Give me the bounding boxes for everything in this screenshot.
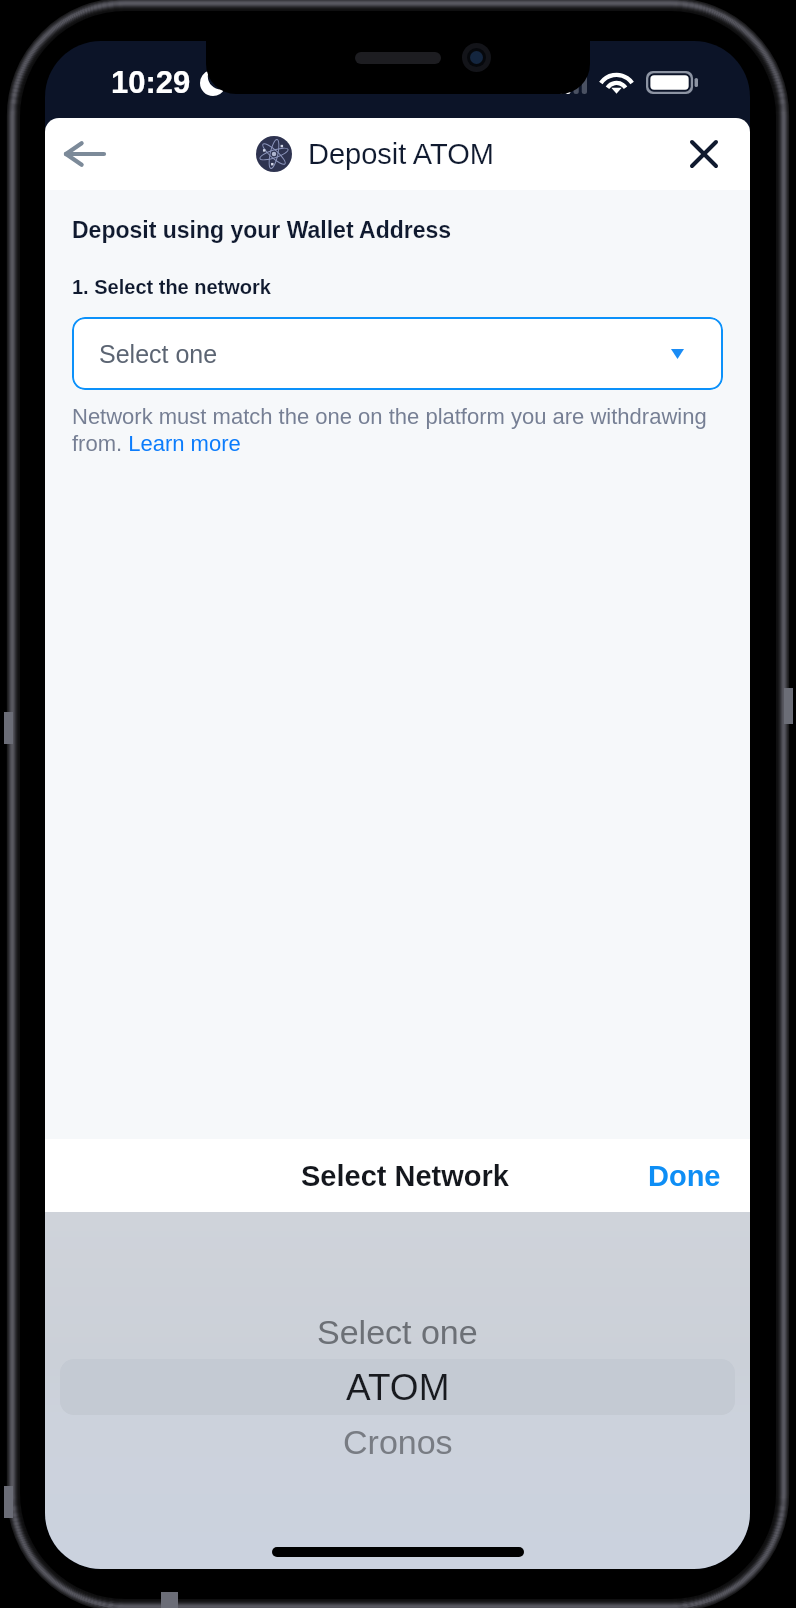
staticText: ATOM [346,1367,450,1408]
button[interactable]: Back [54,124,114,184]
button[interactable]: Done [638,1152,750,1200]
staticText: Deposit ATOM [308,138,494,170]
staticText: Select Network [301,1160,509,1192]
staticText: Select one [317,1313,478,1351]
button[interactable]: ATOM [60,1359,735,1415]
staticText: 1. Select the network [72,276,271,298]
button[interactable]: Close [674,124,734,184]
staticText: Select one [99,340,218,368]
staticText: Cronos [343,1423,453,1461]
staticText: Deposit using your Wallet Address [72,217,452,243]
staticText: Network must match the one on the platfo… [72,404,723,456]
button[interactable]: Select one [72,317,723,390]
staticText: Done [648,1160,721,1192]
staticText: 10:29 [111,65,191,100]
